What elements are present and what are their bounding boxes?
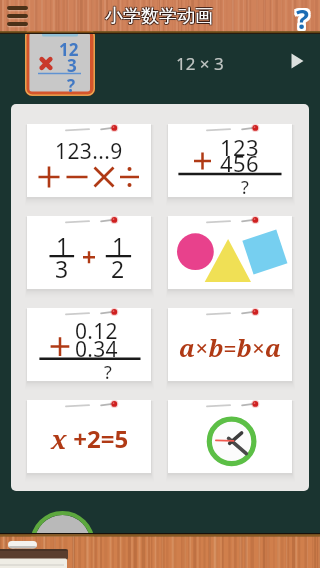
staticText: ? [67,74,76,97]
staticText: 1 [112,230,126,261]
staticText: 小学数学动画 [104,6,212,29]
staticText: ? [296,0,309,34]
button[interactable]: 123 [168,124,292,197]
staticText: 2 [111,253,125,284]
staticText: +2=5 [67,422,129,455]
staticText: ? [298,0,311,34]
staticText: 小学数学动画 [104,5,212,28]
button[interactable] [168,400,292,473]
staticText: ? [104,360,112,385]
staticText: x [51,421,67,456]
staticText: ? [294,2,307,36]
staticText: 3 [55,253,69,284]
button[interactable]: 123...9 [27,124,151,197]
button[interactable]: Current problem [25,29,95,96]
staticText: 456 [220,148,259,178]
staticText: 小学数学动画 [106,6,214,29]
button[interactable]: Play [289,51,309,71]
button[interactable]: 0.12 [27,308,151,381]
staticText: 123 [220,132,259,162]
staticText: 12 [59,38,79,61]
button[interactable]: x [27,400,151,473]
staticText: a×b=b×a [179,331,282,364]
staticText: ? [294,0,307,34]
button[interactable]: Menu [0,0,36,32]
button[interactable]: Help [286,0,320,34]
staticText: 3 [67,54,77,77]
button[interactable]: a×b=b×a [168,308,292,381]
staticText: 1 [56,230,70,261]
staticText: 小学数学动画 [106,5,214,28]
staticText: ? [296,0,309,32]
button[interactable]: 1 [27,216,151,289]
staticText: 0.34 [75,335,118,364]
staticText: 小学数学动画 [105,4,213,27]
staticText: ? [298,2,311,36]
staticText: ? [298,0,311,32]
staticText: ? [296,2,309,36]
staticText: 小学数学动画 [105,6,213,29]
staticText: 0.12 [75,317,118,346]
staticText: 12 × 3 [176,52,224,75]
button[interactable] [168,216,292,289]
staticText: 小学数学动画 [104,4,212,27]
staticText: 123...9 [55,137,123,166]
staticText: 小学数学动画 [106,4,214,27]
staticText: ? [241,175,249,200]
staticText: 小学数学动画 [105,5,213,28]
staticText: ? [294,0,307,32]
